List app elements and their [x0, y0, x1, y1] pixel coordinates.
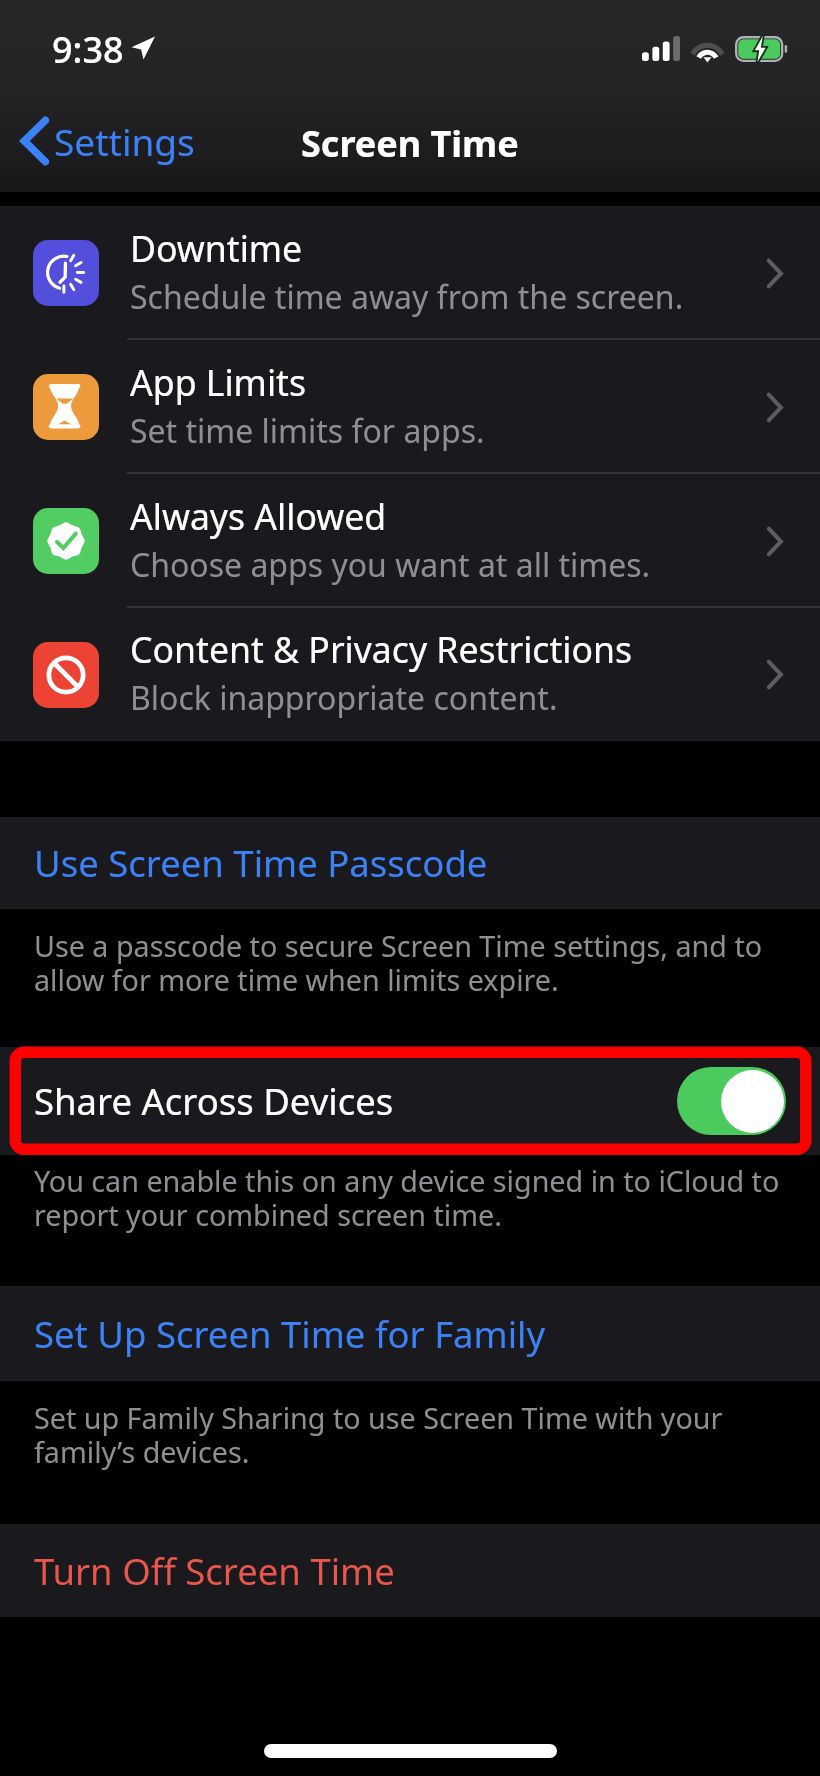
staticText: You can enable this on any device signed… [34, 1161, 796, 1235]
staticText: 9:38 [52, 25, 124, 74]
button[interactable]: Set Up Screen Time for Family [0, 1286, 820, 1381]
staticText: Downtime [130, 224, 303, 272]
staticText: Share Across Devices [34, 1076, 677, 1126]
staticText: Content & Privacy Restrictions [130, 625, 633, 673]
button[interactable]: Turn Off Screen Time [0, 1524, 820, 1617]
staticText: Set up Family Sharing to use Screen Time… [34, 1398, 796, 1472]
staticText: Turn Off Screen Time [34, 1546, 395, 1596]
button[interactable]: Settings [14, 107, 195, 175]
button[interactable]: Share Across Devices [0, 1047, 820, 1155]
staticText: Settings [54, 116, 195, 166]
staticText: Block inappropriate content. [130, 676, 558, 720]
button[interactable]: Downtime [0, 206, 820, 340]
button[interactable]: Content & Privacy Restrictions [0, 608, 820, 741]
staticText: Choose apps you want at all times. [130, 543, 651, 587]
button[interactable]: App Limits [0, 340, 820, 474]
staticText: Set time limits for apps. [130, 409, 485, 453]
staticText: App Limits [130, 358, 306, 406]
button[interactable]: Always Allowed [0, 474, 820, 608]
staticText: Use Screen Time Passcode [34, 838, 488, 888]
staticText: Screen Time [301, 119, 519, 168]
staticText: Use a passcode to secure Screen Time set… [34, 926, 796, 1000]
button[interactable]: Use Screen Time Passcode [0, 817, 820, 909]
staticText: Schedule time away from the screen. [130, 275, 684, 319]
staticText: Always Allowed [130, 492, 387, 540]
button[interactable]: Share Across Devices toggle [677, 1067, 786, 1135]
staticText: Set Up Screen Time for Family [34, 1309, 546, 1359]
